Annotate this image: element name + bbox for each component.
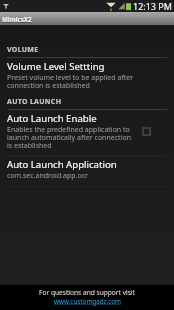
button[interactable]: Auto Launch Enable [0, 110, 174, 155]
button[interactable]: MimicsX2 app bar [0, 12, 174, 25]
staticText: Preset volume level to be applied after … [7, 73, 137, 90]
staticText: 12:13 PM [133, 0, 172, 12]
staticText: AUTO LAUNCH [7, 97, 62, 107]
button[interactable]: Volume Level Settting [0, 58, 174, 95]
button[interactable]: Toggle Auto Launch Enable [142, 127, 151, 136]
staticText: For questions and support visit [39, 288, 135, 297]
button[interactable]: Auto Launch Application [0, 156, 174, 186]
button[interactable]: www.customgadz.com [54, 297, 121, 306]
staticText: Volume Level Settting [7, 60, 105, 73]
staticText: com.sec.android.app.ocr [7, 171, 88, 181]
staticText: Auto Launch Application [7, 158, 117, 171]
staticText: Enables the predefined application to la… [7, 125, 137, 150]
staticText: VOLUME [7, 45, 39, 55]
staticText: Auto Launch Enable [7, 112, 97, 125]
staticText: MimicsX2 [2, 15, 32, 23]
